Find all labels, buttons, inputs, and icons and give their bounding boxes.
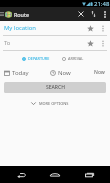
button[interactable]: Today [3,68,30,78]
staticText: Today [12,69,29,77]
button[interactable]: To [0,36,110,51]
staticText: DEPARTURE [28,56,50,61]
button[interactable]: Swap origin and destination [87,7,100,21]
button[interactable]: Back [4,166,38,183]
staticText: SEARCH [46,84,65,91]
button[interactable]: My location [0,21,110,36]
staticText: ARRIVAL [68,56,84,61]
button[interactable]: More options [100,7,109,21]
button[interactable]: DEPARTURE [21,54,51,63]
button[interactable]: Favorite [84,36,96,50]
button[interactable]: ARRIVAL [61,54,85,63]
button[interactable]: Recent apps [72,166,106,183]
button[interactable]: Now [49,68,72,78]
staticText: 21:48 [94,0,110,7]
staticText: My location [4,24,36,32]
button[interactable]: More options [96,21,109,35]
button[interactable]: Favorite [84,21,96,35]
button[interactable]: Home [38,166,72,183]
button[interactable]: Close [74,7,87,21]
button[interactable]: MORE OPTIONS [0,98,110,108]
button[interactable]: SEARCH [4,82,106,93]
staticText: Now [58,69,71,77]
staticText: Route [14,11,29,18]
staticText: To [4,39,11,47]
staticText: Now [94,69,105,76]
button[interactable]: Now [92,67,107,78]
button[interactable]: Navigate up [0,7,4,21]
button[interactable]: More options [96,36,109,50]
staticText: MORE OPTIONS [39,101,69,106]
